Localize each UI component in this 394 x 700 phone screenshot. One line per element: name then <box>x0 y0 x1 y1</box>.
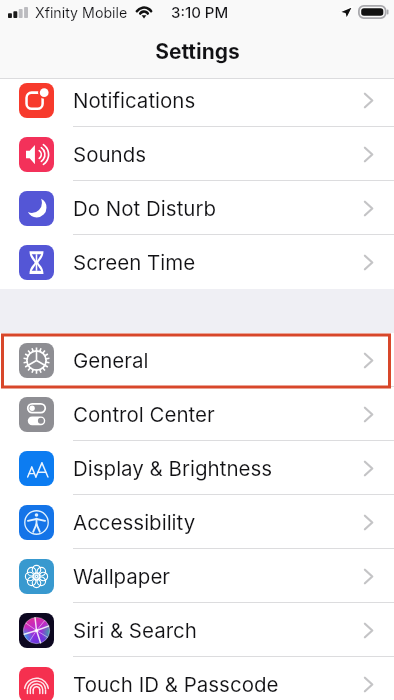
button[interactable]: Sounds <box>0 127 394 181</box>
button[interactable]: Wallpaper <box>0 549 394 603</box>
staticText: Notifications <box>73 88 196 113</box>
button[interactable]: General <box>0 333 394 387</box>
staticText: Display & Brightness <box>73 456 273 481</box>
staticText: Sounds <box>73 142 147 167</box>
button[interactable]: Touch ID & Passcode <box>0 657 394 700</box>
other: Battery full <box>358 5 389 19</box>
staticText: 3:10 PM <box>171 3 229 21</box>
staticText: General <box>73 348 149 373</box>
button[interactable]: Do Not Disturb <box>0 181 394 235</box>
staticText: Do Not Disturb <box>73 196 217 221</box>
staticText: Siri & Search <box>73 618 197 643</box>
staticText: Screen Time <box>73 250 196 275</box>
staticText: Settings <box>155 39 240 64</box>
button[interactable]: Display & Brightness <box>0 441 394 495</box>
staticText: Wallpaper <box>73 564 171 589</box>
staticText: Xfinity Mobile <box>35 4 128 21</box>
button[interactable]: Siri & Search <box>0 603 394 657</box>
button[interactable]: Accessibility <box>0 495 394 549</box>
button[interactable]: Notifications <box>0 73 394 127</box>
staticText: Control Center <box>73 402 215 427</box>
staticText: Accessibility <box>73 510 196 535</box>
button[interactable]: Screen Time <box>0 235 394 289</box>
other: Cellular signal <box>8 7 28 18</box>
other: Location services active <box>339 6 353 19</box>
staticText: Touch ID & Passcode <box>73 672 279 697</box>
button[interactable]: Control Center <box>0 387 394 441</box>
